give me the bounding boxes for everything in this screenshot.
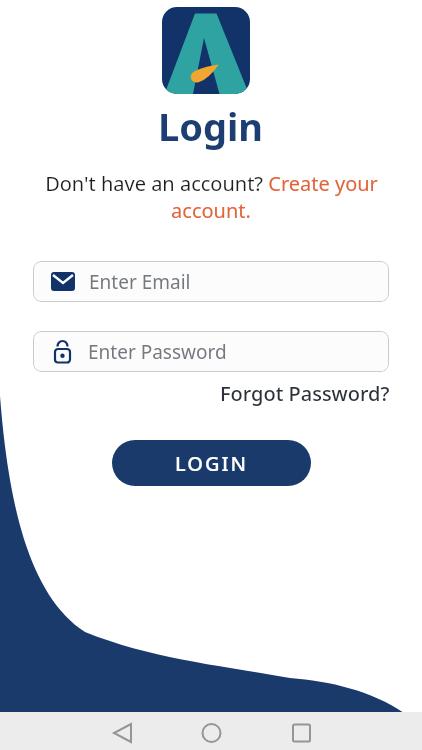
button[interactable]: Don't have an account? Create your [45, 170, 378, 197]
button[interactable]: Enter Password [33, 331, 389, 372]
staticText: LOGIN [175, 450, 249, 477]
staticText: Login [158, 100, 264, 152]
button[interactable]: Enter Email [33, 261, 389, 302]
button[interactable]: account. [171, 197, 251, 224]
staticText: Enter Password [88, 339, 227, 365]
button[interactable]: Forgot Password? [220, 380, 390, 407]
staticText: Enter Email [89, 269, 191, 295]
button[interactable]: LOGIN [112, 440, 311, 486]
